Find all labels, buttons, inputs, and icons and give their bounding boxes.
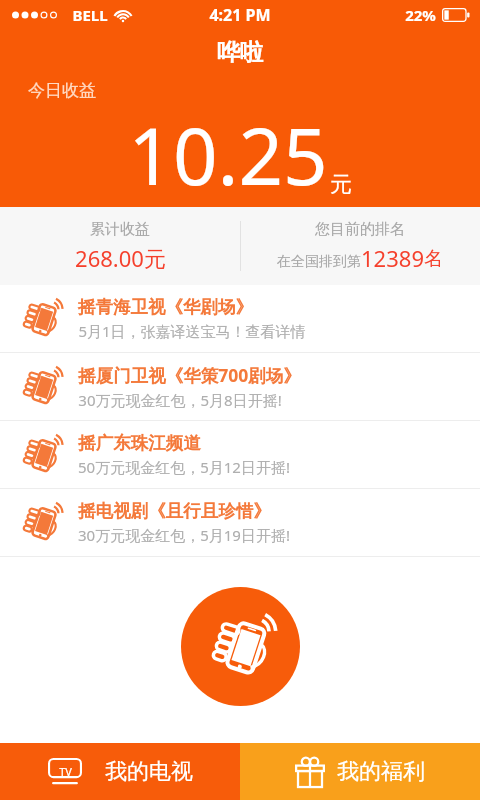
staticText: TV [59, 764, 72, 779]
staticText: 摇青海卫视《华剧场》 [78, 296, 253, 318]
button[interactable]: 摇一摇 [181, 587, 300, 706]
staticText: 30万元现金红包，5月19日开摇! [78, 525, 290, 545]
staticText: 元 [330, 171, 352, 199]
staticText: 名 [424, 247, 443, 271]
staticText: 摇广东珠江频道 [78, 432, 201, 454]
staticText: 今日收益 [28, 80, 96, 101]
button[interactable]: 摇广东珠江频道 [0, 421, 480, 488]
staticText: BELL [72, 5, 108, 25]
button[interactable]: 我的福利 [240, 743, 480, 800]
staticText: 22% [405, 5, 436, 25]
button[interactable]: 摇厦门卫视《华策700剧场》 [0, 353, 480, 420]
staticText: 在全国排到第 [277, 253, 361, 271]
staticText: 累计收益 [90, 220, 150, 239]
button[interactable]: 摇电视剧《且行且珍惜》 [0, 489, 480, 556]
staticText: 您目前的排名 [315, 220, 405, 239]
staticText: 12389 [361, 243, 424, 273]
staticText: 4:21 PM [209, 4, 271, 26]
staticText: 10.25 [128, 102, 328, 207]
staticText: 我的电视 [105, 758, 193, 786]
staticText: 30万元现金红包，5月8日开摇! [78, 390, 282, 410]
staticText: 268.00元 [75, 243, 166, 273]
staticText: 摇电视剧《且行且珍惜》 [78, 500, 271, 522]
button[interactable]: 摇青海卫视《华剧场》 [0, 285, 480, 352]
button[interactable]: TV [0, 743, 240, 800]
staticText: 我的福利 [337, 758, 425, 786]
staticText: 50万元现金红包，5月12日开摇! [78, 457, 290, 477]
staticText: 5月1日，张嘉译送宝马！查看详情 [78, 321, 306, 341]
staticText: 摇厦门卫视《华策700剧场》 [78, 363, 301, 387]
staticText: 哗啦 [217, 38, 263, 67]
